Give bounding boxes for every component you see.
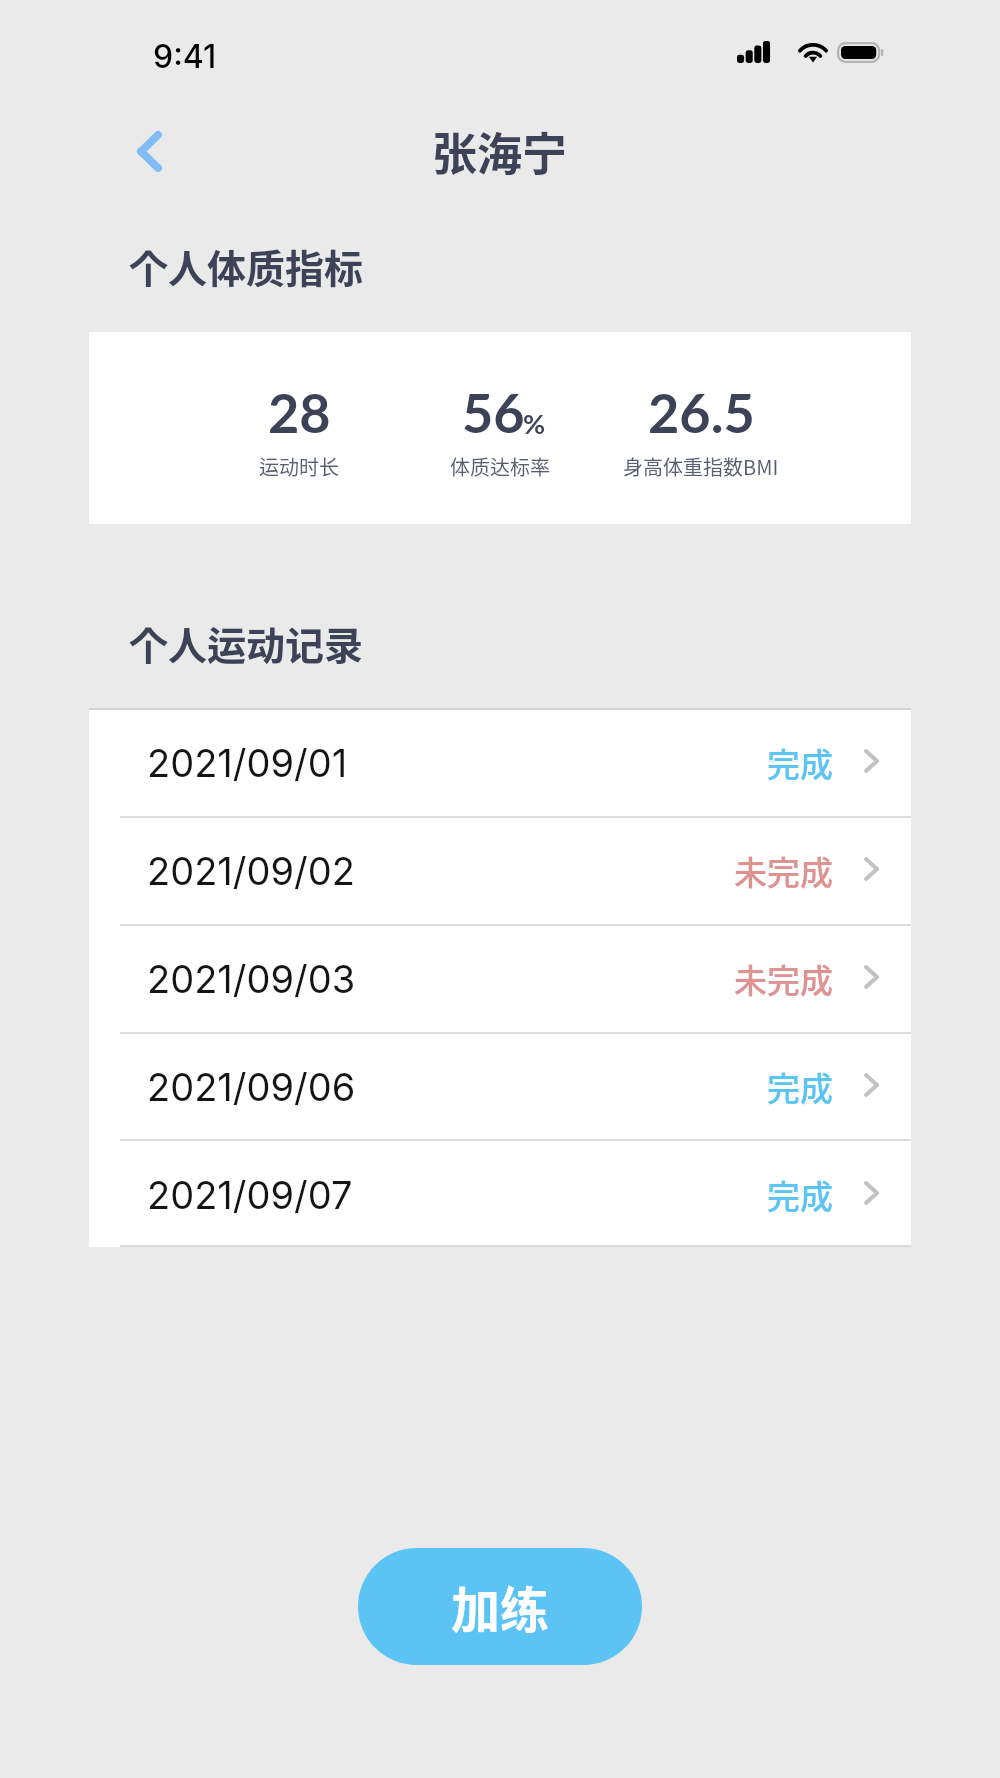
staticText: 2021/09/03 [147, 956, 356, 1002]
staticText: 加练 [451, 1571, 550, 1642]
staticText: 完成 [767, 1171, 833, 1219]
button[interactable]: 2021/09/01 [89, 710, 911, 816]
other: Signal [737, 41, 776, 63]
button[interactable]: 2021/09/03 [89, 926, 911, 1032]
staticText: 张海宁 [432, 119, 568, 184]
staticText: 9:41 [153, 37, 217, 76]
staticText: 2021/09/07 [147, 1172, 353, 1218]
other: Wi-Fi [798, 41, 828, 63]
staticText: 2021/09/01 [147, 740, 348, 786]
button[interactable]: 2021/09/02 [89, 818, 911, 924]
staticText: 2021/09/02 [147, 848, 355, 894]
staticText: 未完成 [734, 955, 833, 1003]
staticText: 26.5 [648, 380, 755, 445]
other: Battery [837, 42, 884, 63]
staticText: 56 [462, 380, 525, 445]
button[interactable]: 2021/09/07 [89, 1142, 911, 1247]
staticText: 个人运动记录 [129, 615, 364, 671]
staticText: 身高体重指数BMI [623, 452, 779, 481]
button[interactable]: Back [108, 110, 190, 192]
staticText: 28 [268, 380, 331, 445]
staticText: 个人体质指标 [129, 238, 364, 294]
staticText: 未完成 [734, 847, 833, 895]
button[interactable]: 加练 [358, 1548, 642, 1665]
staticText: 运动时长 [259, 452, 339, 481]
staticText: 体质达标率 [450, 452, 550, 481]
staticText: 完成 [767, 739, 833, 787]
button[interactable]: 2021/09/06 [89, 1034, 911, 1140]
staticText: % [523, 407, 546, 439]
staticText: 2021/09/06 [147, 1064, 356, 1110]
staticText: 完成 [767, 1063, 833, 1111]
